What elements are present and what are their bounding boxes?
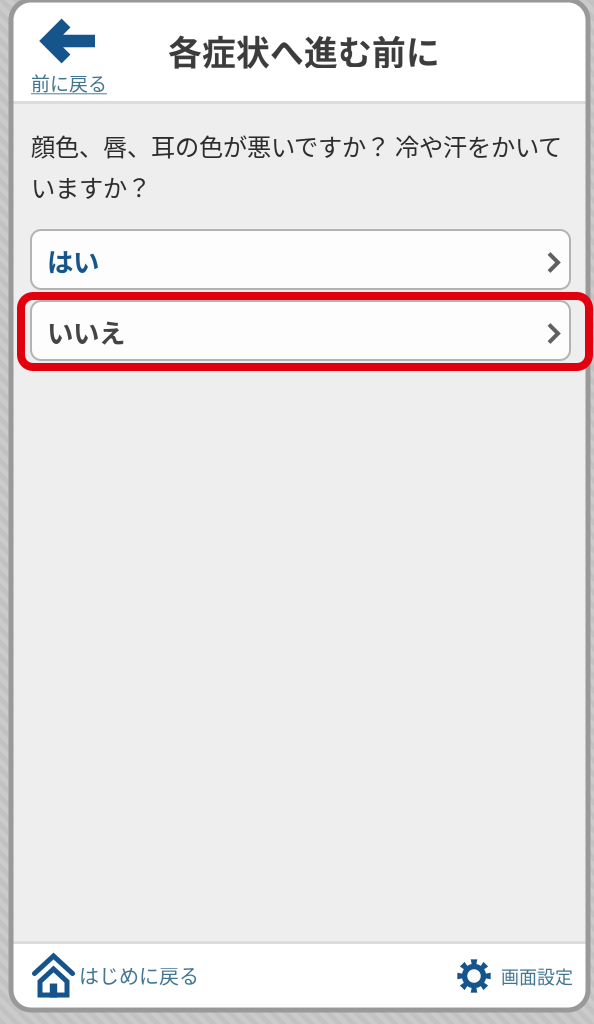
staticText: いいえ <box>47 312 125 351</box>
button[interactable]: はじめに戻る <box>32 949 199 1001</box>
staticText: 画面設定 <box>501 963 573 989</box>
staticText: はじめに戻る <box>79 960 199 989</box>
staticText: 顔色、唇、耳の色が悪いですか？ 冷や汗をかいていますか？ <box>31 128 562 204</box>
button[interactable]: はい <box>31 230 570 289</box>
staticText: 前に戻る <box>31 69 107 96</box>
button[interactable]: 画面設定 <box>457 950 573 1002</box>
button[interactable]: いいえ <box>31 301 570 360</box>
button[interactable]: 前に戻る <box>25 12 135 96</box>
staticText: 各症状へ進む前に <box>168 26 440 75</box>
staticText: はい <box>47 241 99 280</box>
